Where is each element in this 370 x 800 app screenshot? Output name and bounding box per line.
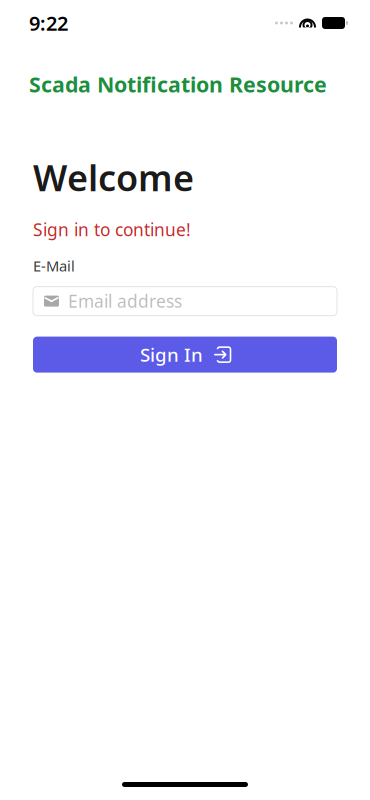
button[interactable]: Sign In <box>33 337 337 373</box>
staticText: Welcome <box>33 153 194 201</box>
staticText: Sign in to continue! <box>33 218 191 241</box>
staticText: E-Mail <box>33 256 75 276</box>
staticText: Sign In <box>140 342 203 367</box>
staticText: Scada Notification Resource <box>29 70 327 98</box>
staticText: 9:22 <box>29 10 68 36</box>
staticText: Email address <box>68 290 182 313</box>
button[interactable]: Email address <box>33 287 337 316</box>
